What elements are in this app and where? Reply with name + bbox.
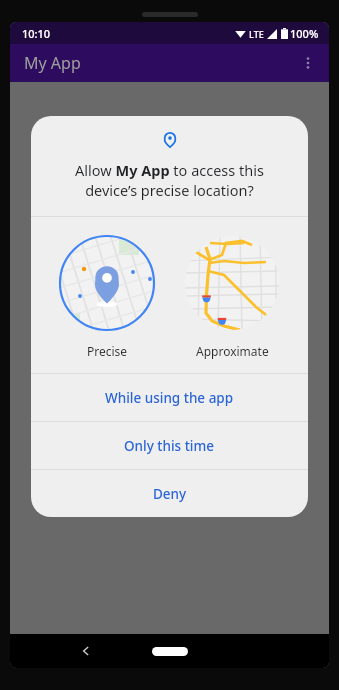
button[interactable]: More options [291,46,325,80]
button[interactable]: Home [152,647,188,656]
button[interactable]: Back [72,637,100,665]
button[interactable]: Deny [31,470,308,517]
staticText: Only this time [124,437,215,455]
staticText: My App [24,52,81,74]
staticText: Allow My App to access this device’s pre… [51,160,288,200]
staticText: While using the app [105,389,234,407]
staticText: LTE [249,28,264,40]
staticText: Precise [87,343,128,359]
button[interactable]: Only this time [31,422,308,469]
staticText: Deny [153,485,187,503]
button[interactable]: Precise [57,233,157,359]
button[interactable]: While using the app [31,374,308,421]
staticText: 100% [290,26,319,41]
staticText: 10:10 [22,26,51,41]
button[interactable]: Approximate [182,233,282,359]
staticText: Approximate [196,343,269,359]
